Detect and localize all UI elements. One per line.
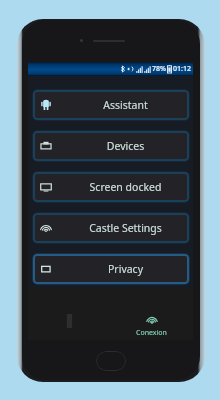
button[interactable]: Privacy <box>33 254 189 284</box>
staticText: Privacy <box>62 262 189 276</box>
button[interactable]: Devices <box>33 131 189 161</box>
button[interactable]: Conexion <box>110 288 193 340</box>
button[interactable]: Castle Settings <box>33 213 189 243</box>
other: Telefono <box>66 313 73 329</box>
staticText: 01:12 <box>173 64 191 74</box>
staticText: Assistant <box>62 98 189 112</box>
staticText: Conexion <box>136 328 167 338</box>
staticText: Devices <box>62 139 189 153</box>
staticText: Castle Settings <box>62 221 189 235</box>
staticText: Screen docked <box>62 180 189 194</box>
button[interactable]: Screen docked <box>33 172 189 202</box>
button[interactable]: Assistant <box>33 90 189 120</box>
staticText: 78% <box>152 64 166 74</box>
